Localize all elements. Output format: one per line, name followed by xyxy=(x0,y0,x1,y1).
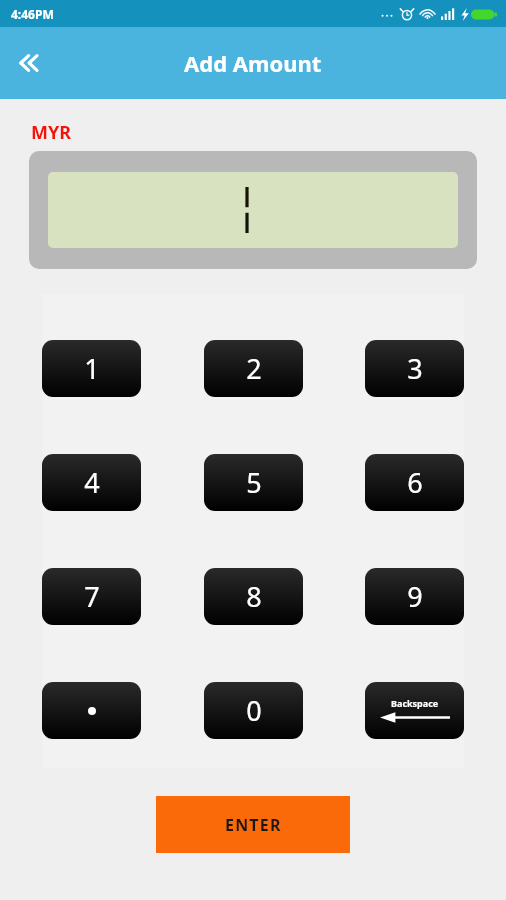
button[interactable] xyxy=(42,682,141,739)
staticText: 0 xyxy=(246,692,262,729)
button[interactable]: 6 xyxy=(365,454,464,511)
button[interactable]: ENTER xyxy=(156,796,350,853)
staticText: MYR xyxy=(31,120,72,145)
staticText: 5 xyxy=(246,464,262,501)
staticText: 1 xyxy=(84,350,100,387)
staticText: 7 xyxy=(84,578,100,615)
button[interactable] xyxy=(29,151,477,269)
button[interactable]: Backspace xyxy=(365,682,464,739)
staticText: 4 xyxy=(84,464,100,501)
button[interactable]: 1 xyxy=(42,340,141,397)
button[interactable]: 5 xyxy=(204,454,303,511)
staticText: 8 xyxy=(246,578,262,615)
staticText: 4:46PM xyxy=(11,6,54,22)
button[interactable]: 0 xyxy=(204,682,303,739)
button[interactable]: 7 xyxy=(42,568,141,625)
button[interactable]: 4 xyxy=(42,454,141,511)
staticText: Add Amount xyxy=(184,48,322,78)
button[interactable]: 8 xyxy=(204,568,303,625)
staticText: ENTER xyxy=(225,814,282,836)
staticText: Backspace xyxy=(391,697,439,709)
button[interactable]: 9 xyxy=(365,568,464,625)
staticText: 3 xyxy=(407,350,423,387)
button[interactable]: Back xyxy=(0,35,56,91)
staticText: 6 xyxy=(407,464,423,501)
button[interactable]: 2 xyxy=(204,340,303,397)
button[interactable]: 3 xyxy=(365,340,464,397)
staticText: 9 xyxy=(407,578,423,615)
staticText: 2 xyxy=(246,350,262,387)
